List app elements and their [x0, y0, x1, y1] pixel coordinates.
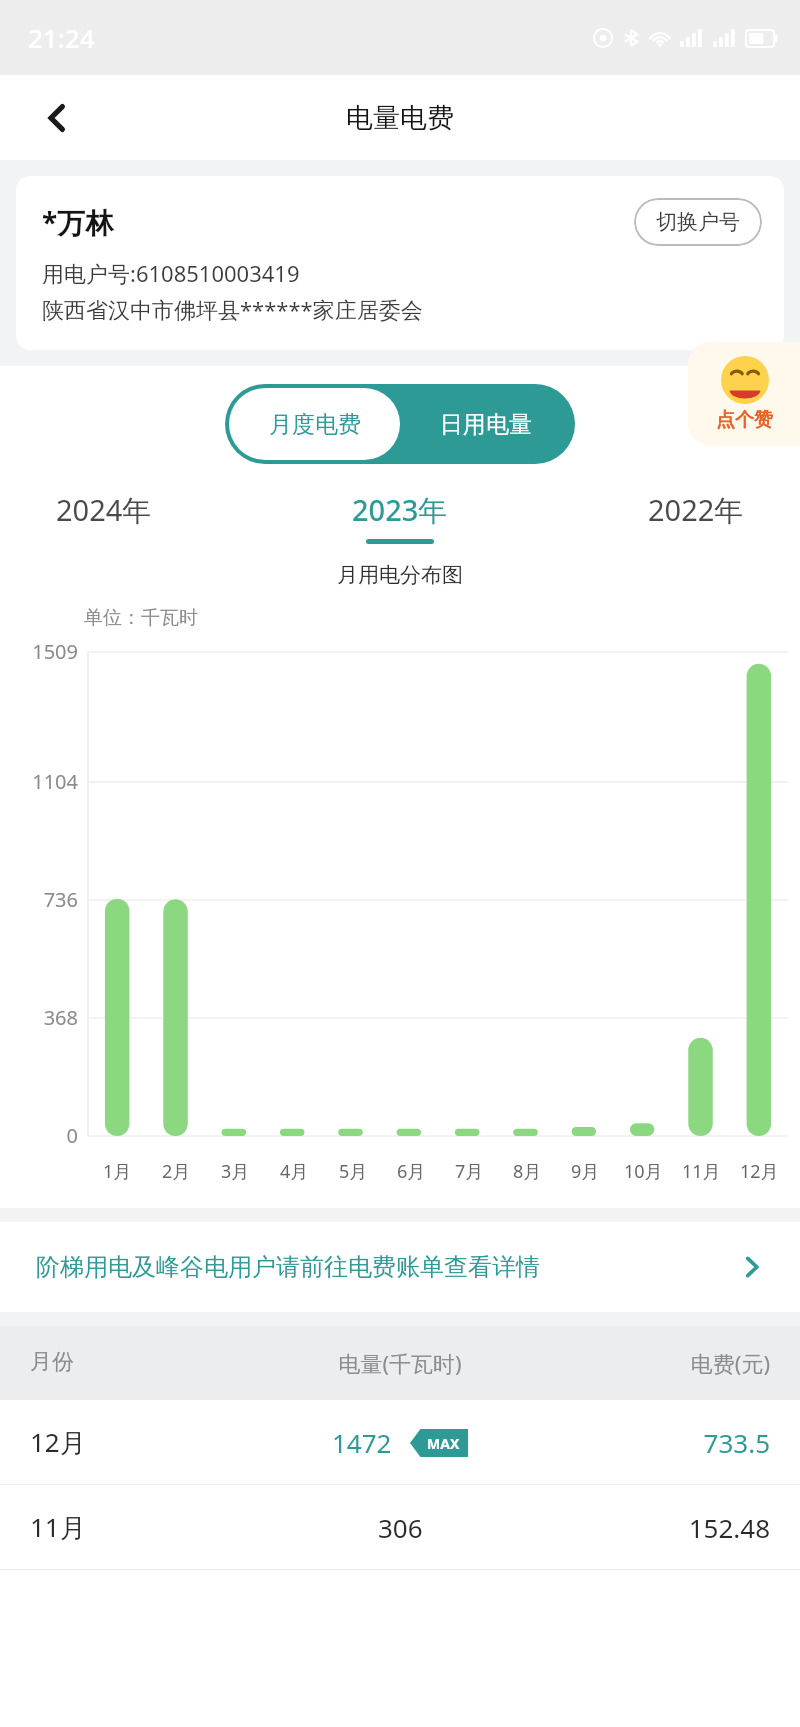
button[interactable]: 2023年 — [336, 486, 464, 548]
staticText: 21:24 — [28, 20, 95, 55]
button[interactable]: Back — [30, 91, 84, 145]
button[interactable]: 2022年 — [632, 486, 760, 548]
staticText: 152.48 — [539, 1510, 770, 1545]
staticText: 306 — [378, 1510, 423, 1545]
staticText: 11月 — [30, 1509, 261, 1545]
button[interactable]: 切换户号 — [634, 198, 762, 246]
staticText: 5月 — [339, 1159, 368, 1184]
staticText: 月用电分布图 — [0, 562, 800, 588]
staticText: 10月 — [624, 1159, 663, 1184]
staticText: 6月 — [397, 1159, 426, 1184]
button[interactable]: 11月 — [0, 1485, 800, 1569]
staticText: 7月 — [455, 1159, 484, 1184]
staticText: 1104 — [0, 768, 78, 795]
staticText: 2024年 — [56, 490, 152, 530]
staticText: 1472 — [332, 1425, 392, 1460]
staticText: 用电户号:6108510003419 — [42, 258, 300, 288]
staticText: 电量(千瓦时) — [261, 1348, 539, 1378]
staticText: 2022年 — [648, 490, 744, 530]
staticText: 阶梯用电及峰谷电用户请前往电费账单查看详情 — [36, 1252, 540, 1282]
staticText: 3月 — [221, 1159, 250, 1184]
staticText: 1月 — [103, 1159, 132, 1184]
staticText: 电费(元) — [539, 1348, 770, 1378]
staticText: 2023年 — [352, 490, 448, 530]
staticText: 368 — [0, 1004, 78, 1031]
staticText: 陕西省汉中市佛坪县******家庄居委会 — [42, 294, 423, 324]
staticText: 切换户号 — [656, 209, 740, 235]
staticText: 4月 — [280, 1159, 309, 1184]
staticText: 8月 — [513, 1159, 542, 1184]
staticText: 月份 — [30, 1348, 261, 1376]
staticText: 11月 — [682, 1159, 721, 1184]
staticText: *万林 — [42, 203, 114, 241]
staticText: MAX — [427, 1434, 460, 1453]
button[interactable]: 阶梯用电及峰谷电用户请前往电费账单查看详情 — [0, 1222, 800, 1312]
button[interactable]: 点个赞 — [688, 342, 800, 446]
staticText: 12月 — [740, 1159, 779, 1184]
staticText: 736 — [0, 886, 78, 913]
staticText: 电量电费 — [346, 101, 454, 135]
staticText: 733.5 — [539, 1425, 770, 1460]
staticText: 2月 — [162, 1159, 191, 1184]
button[interactable]: 12月 — [0, 1400, 800, 1484]
staticText: 9月 — [571, 1159, 600, 1184]
staticText: 日用电量 — [440, 410, 532, 439]
staticText: 12月 — [30, 1424, 261, 1460]
staticText: 1509 — [0, 638, 78, 665]
staticText: 月度电费 — [269, 410, 361, 439]
button[interactable]: 2024年 — [40, 486, 168, 548]
staticText: 点个赞 — [716, 408, 773, 432]
button[interactable]: *万林 — [16, 176, 784, 350]
button[interactable]: 月度电费 — [229, 388, 400, 460]
staticText: 单位：千瓦时 — [84, 606, 198, 630]
staticText: 0 — [0, 1122, 78, 1149]
button[interactable]: 日用电量 — [400, 388, 571, 460]
